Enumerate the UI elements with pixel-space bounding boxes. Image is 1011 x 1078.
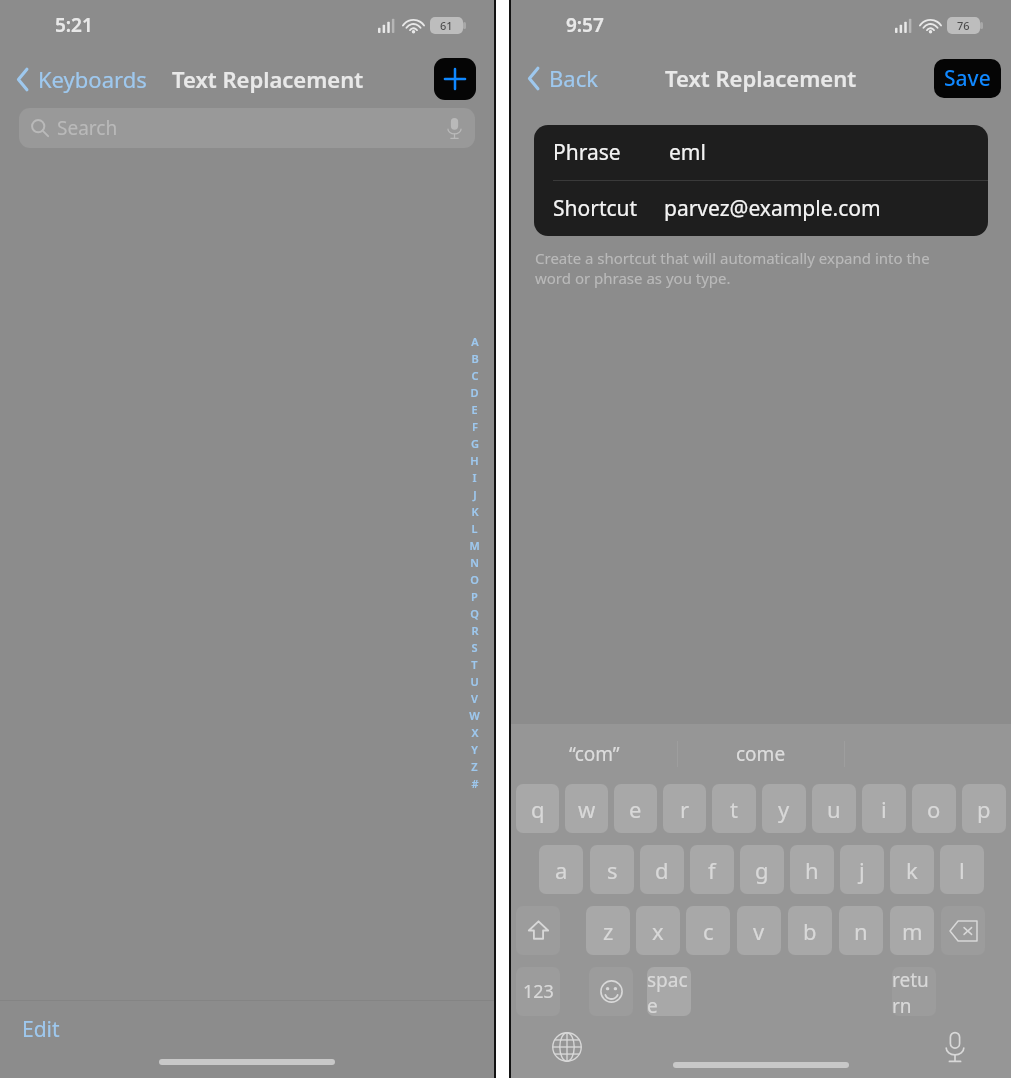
button[interactable]: x [636, 906, 680, 955]
button[interactable]: Keyboards [10, 58, 151, 100]
button[interactable]: Edit [20, 1013, 62, 1046]
button[interactable]: Switch keyboard [549, 1029, 585, 1065]
button[interactable]: “com” [511, 724, 677, 784]
button[interactable]: a [539, 845, 583, 894]
button[interactable]: d [640, 845, 684, 894]
button[interactable]: r [663, 784, 706, 833]
staticText: Text Replacement [172, 64, 364, 94]
button[interactable]: space [647, 967, 691, 1016]
button[interactable]: key [941, 906, 985, 955]
staticText: U [470, 674, 479, 691]
staticText: I [472, 470, 477, 487]
button[interactable]: Add text replacement [434, 58, 476, 100]
staticText: N [470, 555, 479, 572]
staticText: Keyboards [38, 64, 147, 94]
button[interactable]: key [516, 906, 560, 955]
staticText: w [578, 794, 596, 824]
staticText: a [555, 855, 568, 885]
button[interactable]: Back [521, 57, 602, 99]
staticText: x [652, 916, 664, 946]
button[interactable]: c [686, 906, 730, 955]
staticText: Shortcut [553, 194, 638, 223]
staticText: L [471, 521, 478, 538]
button[interactable]: e [614, 784, 657, 833]
staticText: F [472, 419, 478, 436]
staticText: z [603, 916, 614, 946]
staticText: K [471, 504, 479, 521]
staticText: r [680, 794, 690, 824]
staticText: p [977, 794, 991, 824]
button[interactable]: h [790, 845, 834, 894]
staticText: y [778, 794, 790, 824]
staticText: Save [944, 64, 991, 93]
button[interactable]: b [788, 906, 832, 955]
staticText: R [471, 623, 479, 640]
staticText: return [892, 967, 936, 1016]
button[interactable]: p [962, 784, 1006, 833]
button[interactable]: l [940, 845, 984, 894]
staticText: S [471, 640, 478, 657]
button[interactable]: Search [19, 108, 475, 148]
staticText: l [959, 855, 965, 885]
staticText: 76 [957, 18, 970, 33]
staticText: Text Replacement [665, 63, 857, 93]
staticText: m [902, 916, 923, 946]
button[interactable]: Shortcut [534, 181, 988, 236]
staticText: parvez@example.com [664, 194, 881, 223]
staticText: space [647, 967, 691, 1016]
staticText: come [736, 741, 786, 767]
button[interactable]: Dictate [937, 1029, 973, 1065]
button[interactable]: i [862, 784, 906, 833]
staticText: Search [57, 115, 118, 141]
staticText: 5:21 [55, 12, 93, 38]
button[interactable]: z [586, 906, 630, 955]
staticText: B [471, 351, 479, 368]
staticText: H [470, 453, 479, 470]
button[interactable]: come [677, 724, 844, 784]
staticText: i [881, 794, 887, 824]
staticText: k [906, 855, 918, 885]
staticText: J [473, 487, 477, 504]
staticText: b [803, 916, 817, 946]
button[interactable]: y [762, 784, 806, 833]
button[interactable]: t [712, 784, 756, 833]
button[interactable]: m [890, 906, 934, 955]
button[interactable]: s [590, 845, 634, 894]
staticText: 9:57 [566, 12, 604, 38]
staticText: q [531, 794, 545, 824]
staticText: O [470, 572, 479, 589]
button[interactable]: key [589, 967, 633, 1016]
button[interactable]: 123 [516, 967, 560, 1016]
staticText: Q [470, 606, 479, 623]
staticText: j [859, 855, 865, 885]
button[interactable]: Save [934, 59, 1001, 98]
button[interactable]: f [690, 845, 734, 894]
button[interactable]: o [912, 784, 956, 833]
staticText: D [470, 385, 479, 402]
staticText: d [655, 855, 669, 885]
staticText: g [755, 855, 769, 885]
staticText: n [854, 916, 868, 946]
button[interactable]: Phrase [534, 125, 988, 180]
staticText: t [730, 794, 738, 824]
button[interactable]: w [565, 784, 608, 833]
staticText: “com” [569, 741, 620, 767]
staticText: Phrase [553, 138, 621, 167]
button[interactable]: u [812, 784, 856, 833]
button[interactable]: j [840, 845, 884, 894]
button[interactable]: k [890, 845, 934, 894]
staticText: Y [471, 742, 478, 759]
button[interactable]: return [892, 967, 936, 1016]
staticText: Z [471, 759, 478, 776]
button[interactable]: g [740, 845, 784, 894]
staticText: E [471, 402, 478, 419]
staticText: W [469, 708, 480, 725]
staticText: 123 [523, 979, 554, 1004]
staticText: e [629, 794, 642, 824]
button[interactable]: q [516, 784, 559, 833]
staticText: c [703, 916, 714, 946]
staticText: A [471, 334, 479, 351]
button[interactable]: v [737, 906, 781, 955]
button[interactable]: n [839, 906, 883, 955]
